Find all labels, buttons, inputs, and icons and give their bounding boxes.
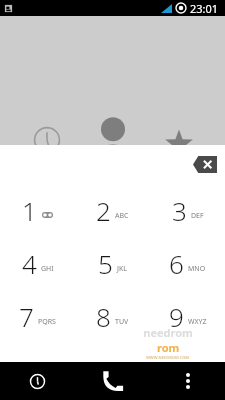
staticText: 6 <box>169 246 184 281</box>
staticText: * <box>32 357 43 383</box>
button[interactable]: Call history <box>0 362 75 400</box>
button[interactable]: 5 <box>75 237 150 290</box>
staticText: 8 <box>96 299 111 334</box>
button[interactable]: Dial pad <box>75 362 150 400</box>
button[interactable]: More options <box>150 362 225 400</box>
staticText: MNO <box>188 264 206 274</box>
button[interactable]: 6 <box>150 237 225 290</box>
button[interactable]: 4 <box>0 237 75 290</box>
button[interactable]: 3 <box>150 183 225 237</box>
staticText: rom <box>157 340 180 355</box>
staticText: 2 <box>96 193 111 228</box>
button[interactable]: 7 <box>0 290 75 343</box>
staticText: 4 <box>22 246 37 281</box>
button[interactable]: 9 <box>150 290 225 343</box>
staticText: 3 <box>172 193 187 228</box>
button[interactable]: Backspace <box>193 156 217 173</box>
staticText: WWW.NEEDROM.COM <box>146 355 190 360</box>
staticText: TUV <box>115 317 129 327</box>
button[interactable]: * <box>0 343 75 396</box>
button[interactable]: # <box>150 343 225 396</box>
staticText: 23:01 <box>190 1 219 16</box>
staticText: 9 <box>169 299 184 334</box>
staticText: JKL <box>117 264 127 274</box>
button[interactable]: 2 <box>75 183 150 237</box>
staticText: PQRS <box>38 317 56 327</box>
staticText: 1 <box>22 193 37 228</box>
button[interactable]: 0 <box>75 343 150 396</box>
button[interactable]: 1 <box>0 183 75 237</box>
staticText: WXYZ <box>188 317 207 327</box>
button[interactable]: Contacts <box>80 104 146 148</box>
staticText: GHI <box>41 264 54 274</box>
button[interactable]: Favorites <box>146 104 212 148</box>
staticText: 5 <box>98 246 113 281</box>
staticText: DEF <box>191 211 204 221</box>
staticText: 0 <box>100 352 115 387</box>
button[interactable]: 8 <box>75 290 150 343</box>
staticText: needrom <box>143 325 193 340</box>
button[interactable]: Recents <box>14 104 80 148</box>
staticText: 7 <box>19 299 34 334</box>
staticText: # <box>181 357 194 383</box>
staticText: ABC <box>115 211 129 221</box>
